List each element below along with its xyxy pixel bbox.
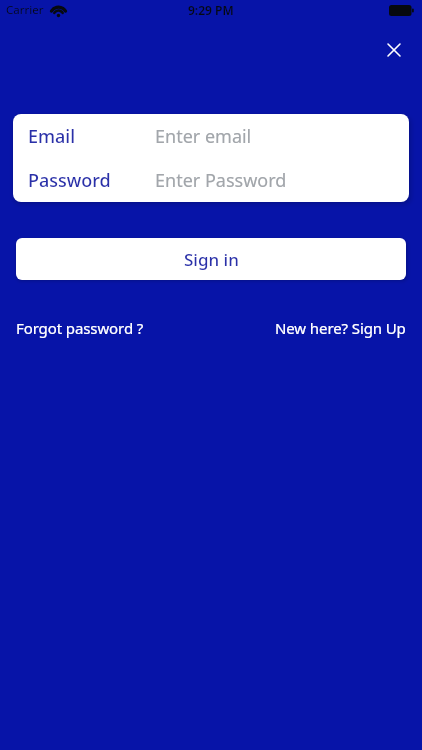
button[interactable]: Sign in bbox=[16, 238, 406, 280]
staticText: 9:29 PM bbox=[188, 2, 234, 18]
button[interactable]: New here? Sign Up bbox=[275, 318, 406, 338]
button[interactable] bbox=[381, 37, 407, 63]
staticText: Password bbox=[28, 168, 111, 193]
button[interactable]: Forgot password ? bbox=[16, 318, 144, 338]
button[interactable]: Password bbox=[13, 159, 409, 202]
staticText: Carrier bbox=[6, 2, 44, 18]
staticText: Sign in bbox=[184, 248, 239, 271]
staticText: Email bbox=[28, 124, 76, 149]
staticText: Forgot password ? bbox=[16, 318, 144, 338]
staticText: Enter Password bbox=[155, 168, 287, 193]
staticText: Enter email bbox=[155, 124, 252, 149]
staticText: New here? Sign Up bbox=[275, 318, 406, 338]
button[interactable]: Email bbox=[13, 114, 409, 159]
